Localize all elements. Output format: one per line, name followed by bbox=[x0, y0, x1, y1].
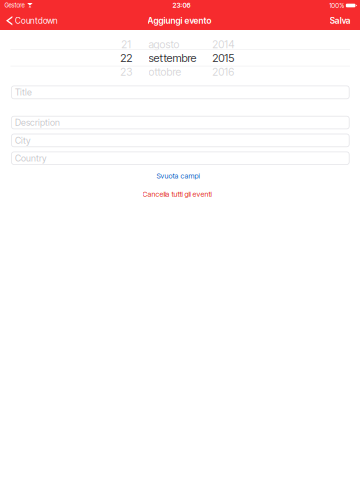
button[interactable]: Cancella tutti gli eventi bbox=[97, 188, 257, 200]
staticText: 100% bbox=[329, 1, 344, 9]
staticText: 2014 bbox=[212, 38, 234, 51]
staticText: 21 bbox=[121, 38, 131, 51]
staticText: Title bbox=[15, 87, 32, 98]
staticText: Description bbox=[15, 117, 60, 128]
button[interactable]: Svuota campi bbox=[118, 170, 238, 182]
staticText: ottobre bbox=[148, 66, 181, 78]
staticText: Salva bbox=[330, 15, 351, 26]
staticText: agosto bbox=[148, 38, 179, 51]
staticText: Countdown bbox=[15, 16, 58, 26]
staticText: settembre bbox=[148, 51, 196, 65]
staticText: 2015 bbox=[212, 51, 234, 65]
staticText: 2016 bbox=[212, 66, 234, 78]
staticText: 23 bbox=[120, 66, 132, 78]
staticText: Cancella tutti gli eventi bbox=[142, 190, 211, 198]
staticText: City bbox=[15, 135, 31, 146]
staticText: Country bbox=[15, 153, 47, 164]
staticText: 23:06 bbox=[172, 1, 190, 9]
button[interactable]: Countdown bbox=[0, 12, 62, 30]
staticText: Gestore bbox=[5, 1, 25, 9]
staticText: Svuota campi bbox=[156, 172, 199, 180]
button[interactable]: Salva bbox=[325, 12, 356, 30]
staticText: 22 bbox=[120, 51, 132, 65]
staticText: Aggiungi evento bbox=[148, 15, 212, 26]
